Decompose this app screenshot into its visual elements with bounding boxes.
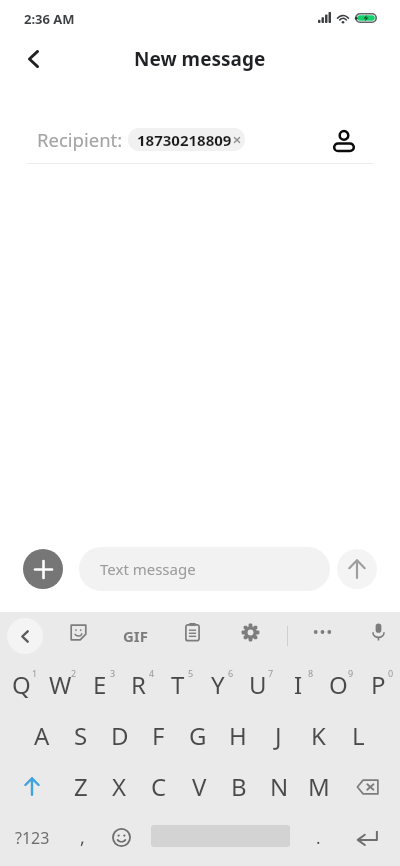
- button[interactable]: Z: [61, 761, 100, 812]
- button[interactable]: G: [178, 710, 218, 761]
- staticText: 8: [308, 667, 314, 679]
- staticText: .: [316, 826, 321, 849]
- staticText: Y: [211, 668, 225, 701]
- staticText: T: [171, 668, 185, 701]
- button[interactable]: Close keyboard toolbar: [7, 618, 43, 654]
- button[interactable]: T: [158, 659, 198, 710]
- staticText: P: [371, 668, 386, 701]
- button[interactable]: H: [218, 710, 258, 761]
- staticText: R: [131, 668, 146, 701]
- staticText: E: [93, 668, 107, 701]
- button[interactable]: Send: [337, 549, 377, 589]
- staticText: GIF: [123, 626, 148, 646]
- button[interactable]: V: [179, 761, 219, 812]
- button[interactable]: N: [259, 761, 299, 812]
- staticText: J: [275, 719, 282, 752]
- button[interactable]: J: [258, 710, 298, 761]
- button[interactable]: Clipboard: [172, 612, 212, 652]
- button[interactable]: U: [238, 659, 278, 710]
- staticText: H: [229, 719, 247, 752]
- staticText: Z: [74, 770, 88, 803]
- staticText: 9: [348, 667, 354, 679]
- staticText: 2:36 AM: [24, 10, 75, 28]
- button[interactable]: A: [22, 710, 61, 761]
- staticText: 1: [32, 667, 38, 679]
- button[interactable]: O: [318, 659, 358, 710]
- staticText: U: [249, 668, 267, 701]
- staticText: 3: [110, 667, 116, 679]
- button[interactable]: Y: [198, 659, 238, 710]
- staticText: Q: [12, 668, 31, 701]
- staticText: Text message: [100, 559, 196, 579]
- button[interactable]: D: [100, 710, 139, 761]
- staticText: G: [189, 719, 207, 752]
- staticText: L: [352, 719, 365, 752]
- button[interactable]: Add attachment: [23, 549, 63, 589]
- staticText: 0: [388, 667, 394, 679]
- button[interactable]: Settings: [230, 612, 270, 652]
- staticText: 4: [149, 667, 155, 679]
- button[interactable]: .: [298, 812, 338, 863]
- button[interactable]: More options: [302, 612, 342, 652]
- staticText: V: [192, 770, 207, 803]
- staticText: B: [231, 770, 247, 803]
- button[interactable]: Back: [11, 37, 55, 81]
- staticText: M: [308, 770, 330, 803]
- button[interactable]: Text message: [79, 547, 330, 591]
- staticText: 6: [228, 667, 234, 679]
- button[interactable]: B: [219, 761, 259, 812]
- button[interactable]: S: [61, 710, 100, 761]
- button[interactable]: I: [278, 659, 318, 710]
- staticText: 2: [71, 667, 77, 679]
- staticText: O: [329, 668, 348, 701]
- button[interactable]: GIF: [115, 616, 155, 656]
- staticText: A: [34, 719, 50, 752]
- button[interactable]: E: [80, 659, 119, 710]
- staticText: K: [311, 719, 326, 752]
- staticText: 7: [268, 667, 274, 679]
- staticText: X: [112, 770, 127, 803]
- button[interactable]: Voice input: [358, 612, 398, 652]
- staticText: ,: [80, 825, 85, 850]
- staticText: 18730218809: [137, 130, 232, 150]
- button[interactable]: Shift: [0, 761, 61, 812]
- staticText: New message: [134, 46, 266, 72]
- staticText: I: [294, 668, 303, 701]
- button[interactable]: Enter: [340, 812, 400, 863]
- button[interactable]: M: [299, 761, 339, 812]
- staticText: F: [152, 719, 165, 752]
- button[interactable]: L: [338, 710, 378, 761]
- staticText: C: [151, 770, 167, 803]
- button[interactable]: Backspace: [339, 761, 400, 812]
- button[interactable]: F: [139, 710, 178, 761]
- button[interactable]: K: [298, 710, 338, 761]
- staticText: ?123: [15, 827, 50, 849]
- button[interactable]: R: [119, 659, 158, 710]
- button[interactable]: 18730218809: [128, 128, 245, 151]
- staticText: S: [74, 719, 88, 752]
- button[interactable]: Q: [2, 659, 41, 710]
- button[interactable]: ,: [62, 812, 102, 863]
- button[interactable]: W: [41, 659, 80, 710]
- staticText: 5: [188, 667, 194, 679]
- button[interactable]: X: [100, 761, 139, 812]
- button[interactable]: Emoji: [101, 812, 141, 863]
- button[interactable]: Stickers: [58, 612, 98, 652]
- button[interactable]: P: [358, 659, 398, 710]
- button[interactable]: ?123: [0, 812, 64, 863]
- staticText: Recipient:: [37, 127, 123, 152]
- staticText: N: [270, 770, 289, 803]
- staticText: W: [49, 668, 72, 701]
- button[interactable]: C: [139, 761, 179, 812]
- staticText: D: [111, 719, 129, 752]
- button[interactable]: Contacts: [324, 121, 364, 161]
